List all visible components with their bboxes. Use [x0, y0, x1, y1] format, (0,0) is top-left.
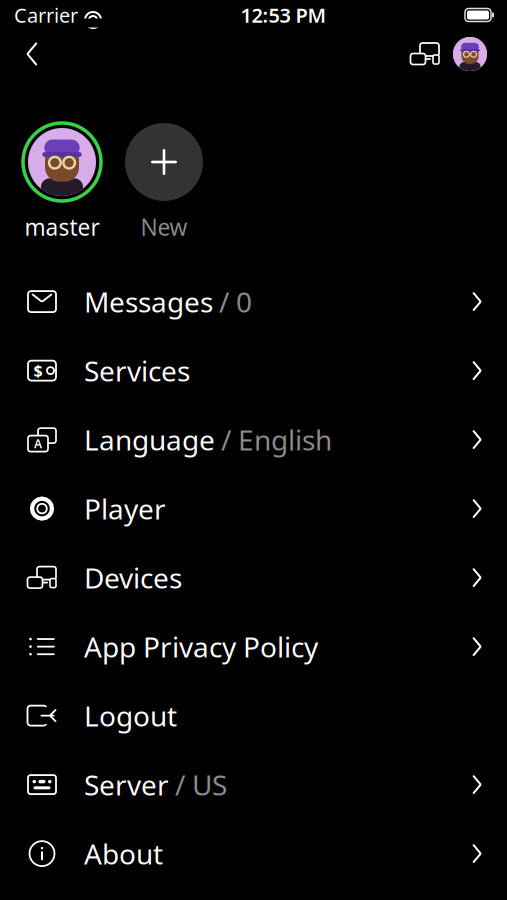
button[interactable]: App Privacy Policy — [0, 612, 507, 681]
staticText: 12:53 PM — [240, 2, 326, 28]
staticText: New — [140, 212, 187, 242]
button[interactable]: New — [121, 122, 207, 242]
button[interactable]: Messages — [0, 267, 507, 336]
button[interactable]: About — [0, 819, 507, 888]
staticText: master — [24, 212, 99, 242]
staticText: Devices — [84, 559, 182, 596]
staticText: Server — [84, 766, 169, 803]
staticText: Player — [84, 490, 166, 527]
button[interactable]: Logout — [0, 681, 507, 750]
staticText: / English — [221, 421, 332, 458]
button[interactable]: Player — [0, 474, 507, 543]
button[interactable]: Cast to device — [403, 34, 447, 74]
button[interactable]: Back — [10, 32, 54, 76]
staticText: Carrier — [14, 2, 78, 28]
staticText: Services — [84, 352, 190, 389]
staticText: $ — [33, 360, 42, 381]
staticText: About — [84, 835, 163, 872]
button[interactable]: Devices — [0, 543, 507, 612]
staticText: Messages — [84, 283, 213, 320]
staticText: A — [34, 436, 42, 451]
staticText: / 0 — [219, 283, 252, 320]
button[interactable]: Profile — [447, 31, 493, 77]
button[interactable]: $ — [0, 336, 507, 405]
button[interactable]: A — [0, 405, 507, 474]
staticText: / US — [175, 766, 227, 803]
staticText: Logout — [84, 697, 177, 734]
button[interactable]: master — [19, 122, 105, 242]
staticText: App Privacy Policy — [84, 628, 318, 665]
staticText: Language — [84, 421, 215, 458]
button[interactable]: Server — [0, 750, 507, 819]
